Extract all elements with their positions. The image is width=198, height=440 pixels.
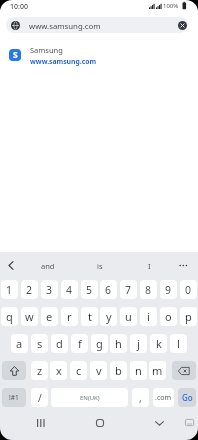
staticText: I: [148, 261, 151, 271]
button[interactable]: j: [130, 334, 147, 353]
button[interactable]: m: [149, 361, 166, 380]
button[interactable]: 6: [100, 280, 117, 299]
staticText: f: [78, 336, 82, 351]
staticText: k: [156, 336, 162, 351]
staticText: 1: [6, 283, 13, 297]
button[interactable]: [185, 419, 194, 426]
button[interactable]: 9: [160, 280, 177, 299]
staticText: h: [115, 336, 122, 351]
staticText: x: [56, 363, 62, 378]
staticText: a: [16, 336, 23, 351]
staticText: w: [25, 309, 34, 324]
button[interactable]: s: [31, 334, 48, 353]
button[interactable]: I: [129, 258, 169, 273]
staticText: i: [147, 309, 150, 324]
staticText: 0: [185, 283, 192, 297]
button[interactable]: Go: [178, 388, 196, 407]
button[interactable]: 8: [140, 280, 157, 299]
staticText: 4: [66, 283, 73, 297]
button[interactable]: x: [50, 361, 67, 380]
button[interactable]: p: [180, 307, 197, 326]
button[interactable]: [30, 412, 52, 434]
button[interactable]: c: [70, 361, 87, 380]
button[interactable]: z: [31, 361, 48, 380]
staticText: n: [135, 363, 142, 378]
button[interactable]: [172, 361, 196, 380]
staticText: m: [152, 363, 163, 378]
button[interactable]: !#1: [2, 388, 26, 407]
button[interactable]: [6, 261, 16, 270]
staticText: 8: [145, 283, 152, 297]
button[interactable]: 7: [120, 280, 137, 299]
button[interactable]: n: [130, 361, 147, 380]
staticText: y: [106, 309, 112, 324]
staticText: www.samsung.com: [30, 57, 97, 66]
staticText: c: [76, 363, 82, 378]
button[interactable]: v: [90, 361, 107, 380]
staticText: l: [177, 336, 180, 351]
button[interactable]: g: [91, 334, 108, 353]
button[interactable]: r: [61, 307, 78, 326]
button[interactable]: d: [51, 334, 68, 353]
button[interactable]: h: [110, 334, 127, 353]
staticText: S: [13, 49, 18, 61]
staticText: 3: [46, 283, 53, 297]
button[interactable]: EN(UK): [51, 388, 128, 407]
staticText: g: [96, 336, 103, 351]
button[interactable]: f: [71, 334, 88, 353]
button[interactable]: l: [170, 334, 187, 353]
button[interactable]: 2: [21, 280, 38, 299]
button[interactable]: www.samsung.com: [6, 17, 188, 33]
button[interactable]: b: [110, 361, 127, 380]
button[interactable]: .com: [153, 388, 174, 407]
button[interactable]: /: [31, 388, 48, 407]
staticText: /: [38, 391, 42, 405]
staticText: d: [56, 336, 63, 351]
button[interactable]: q: [1, 307, 18, 326]
staticText: r: [67, 309, 72, 324]
staticText: EN(UK): [80, 394, 100, 402]
staticText: !#1: [9, 393, 19, 402]
button[interactable]: [89, 412, 111, 434]
button[interactable]: e: [41, 307, 58, 326]
staticText: 5: [86, 283, 93, 297]
button[interactable]: S: [0, 44, 198, 66]
staticText: 100%: [163, 2, 179, 10]
staticText: Samsung: [30, 45, 63, 55]
button[interactable]: y: [100, 307, 117, 326]
staticText: j: [137, 336, 140, 351]
button[interactable]: [178, 262, 192, 269]
staticText: e: [46, 309, 53, 324]
staticText: 7: [125, 283, 132, 297]
button[interactable]: ,: [132, 388, 149, 407]
button[interactable]: 3: [41, 280, 58, 299]
staticText: o: [165, 309, 172, 324]
button[interactable]: i: [140, 307, 157, 326]
button[interactable]: [2, 361, 26, 380]
button[interactable]: 0: [180, 280, 197, 299]
staticText: q: [6, 309, 13, 324]
button[interactable]: is: [80, 258, 120, 273]
button[interactable]: 4: [61, 280, 78, 299]
button[interactable]: [148, 412, 170, 434]
staticText: z: [37, 363, 43, 378]
staticText: Go: [182, 392, 193, 403]
staticText: t: [88, 309, 92, 324]
button[interactable]: 1: [1, 280, 18, 299]
staticText: and: [41, 261, 55, 271]
button[interactable]: t: [81, 307, 98, 326]
button[interactable]: a: [11, 334, 28, 353]
button[interactable]: u: [120, 307, 137, 326]
button[interactable]: w: [21, 307, 38, 326]
staticText: 6: [105, 283, 112, 297]
button[interactable]: and: [28, 258, 68, 273]
button[interactable]: 5: [81, 280, 98, 299]
staticText: v: [96, 363, 102, 378]
button[interactable]: k: [150, 334, 167, 353]
button[interactable]: [178, 21, 187, 30]
staticText: u: [125, 309, 132, 324]
staticText: is: [97, 261, 103, 271]
staticText: p: [185, 309, 192, 324]
button[interactable]: o: [160, 307, 177, 326]
staticText: 10:00: [10, 2, 28, 12]
